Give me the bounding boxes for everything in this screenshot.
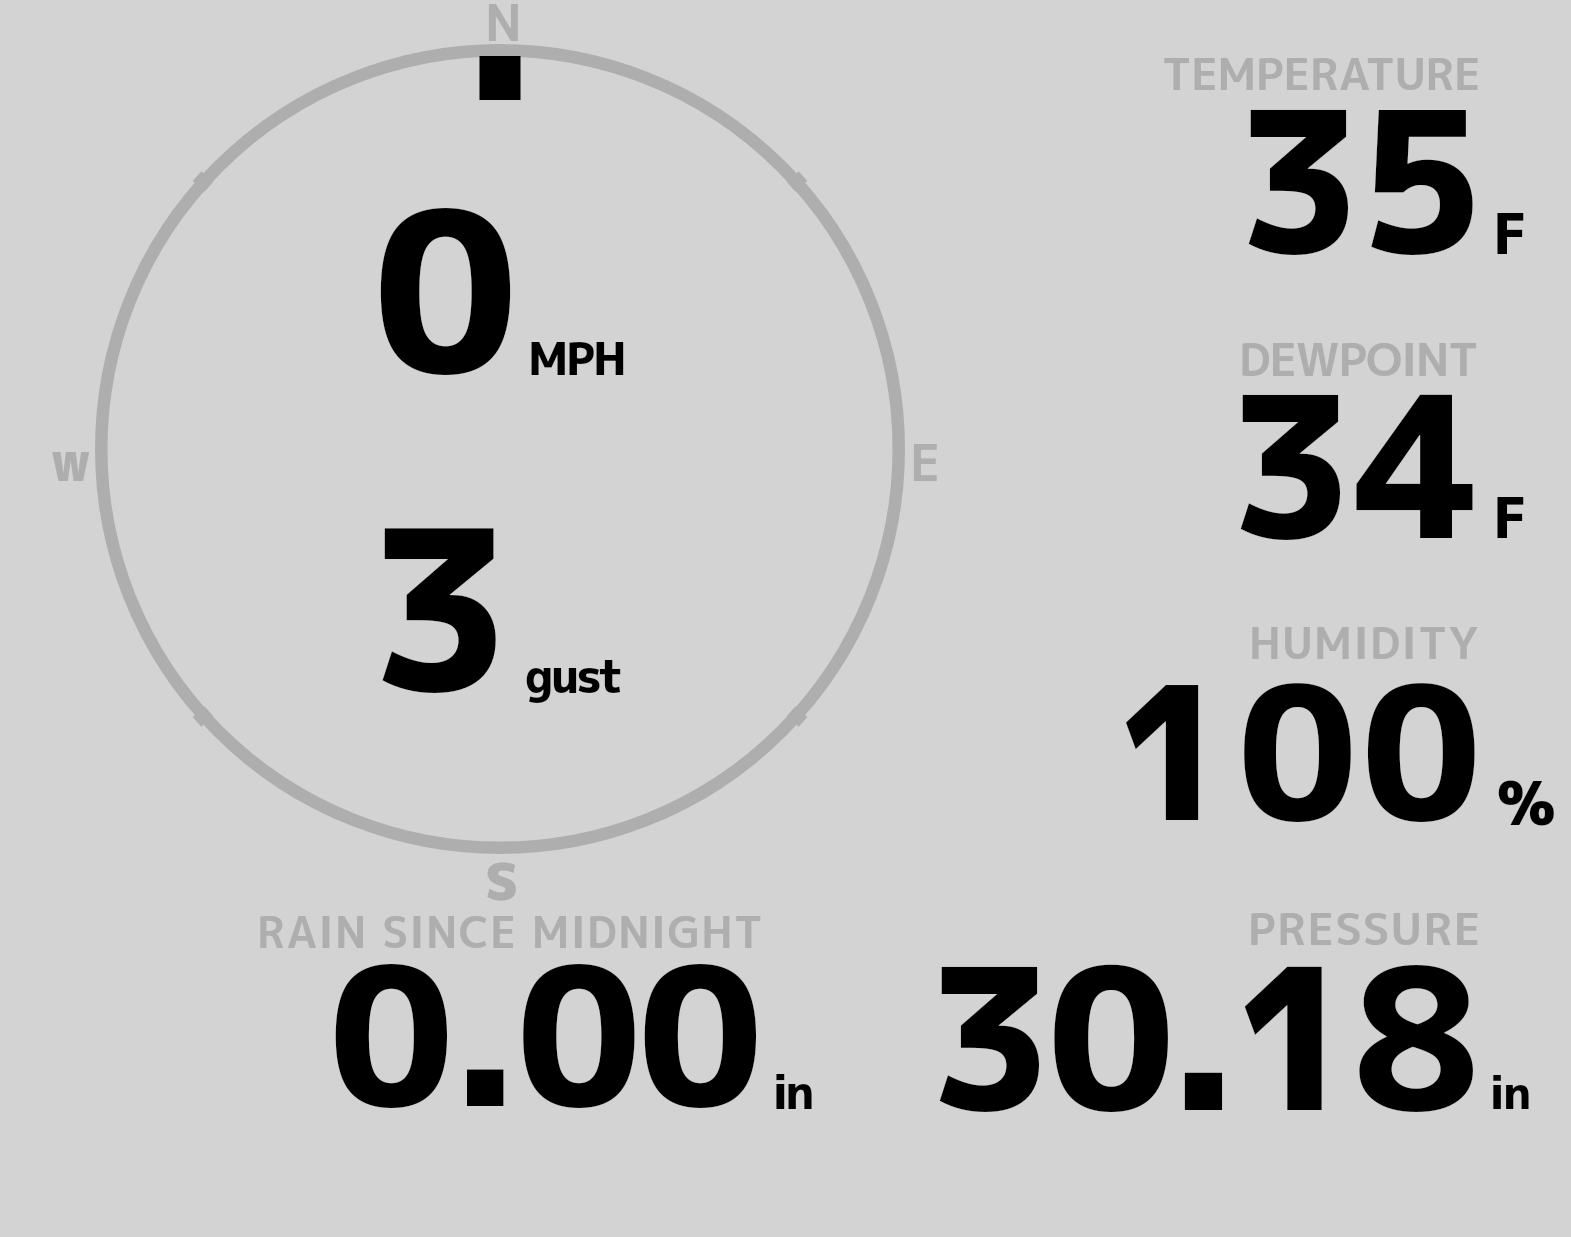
button[interactable]: Wind gust 3 miles per hour [340,445,640,715]
staticText: 100 [1114,622,1486,842]
staticText: E [910,427,941,497]
staticText: RAIN SINCE MIDNIGHT [257,902,764,962]
button[interactable]: Wind speed 0 miles per hour [340,125,640,390]
button[interactable]: Wind direction: north [95,44,905,854]
staticText: in [772,1058,812,1124]
staticText: S [485,845,519,916]
staticText: 0.00 [329,900,760,1120]
staticText: PRESSURE [1248,898,1482,959]
staticText: MPH [528,326,625,389]
staticText: TEMPERATURE [1162,43,1481,104]
staticText: gust [525,643,621,707]
staticText: 30.18 [927,899,1473,1119]
staticText: DEWPOINT [1239,327,1478,390]
staticText: 34 [1228,327,1481,547]
staticText: 0 [373,133,518,398]
button[interactable]: Temperature 35 degrees Fahrenheit [1110,45,1555,265]
staticText: F [1493,477,1527,556]
button[interactable]: Rain since midnight 0.00 inches [255,900,825,1120]
staticText: in [1489,1060,1530,1124]
staticText: N [485,0,522,57]
button[interactable]: Dewpoint 34 degrees Fahrenheit [1110,330,1555,550]
button[interactable]: Pressure 30.18 inches of mercury [910,900,1555,1120]
staticText: HUMIDITY [1249,613,1480,673]
staticText: W [51,438,91,494]
staticText: 3 [368,451,514,721]
staticText: F [1493,193,1527,272]
staticText: % [1497,760,1556,844]
staticText: 35 [1236,42,1481,262]
button[interactable]: Humidity 100 percent [1110,615,1555,835]
